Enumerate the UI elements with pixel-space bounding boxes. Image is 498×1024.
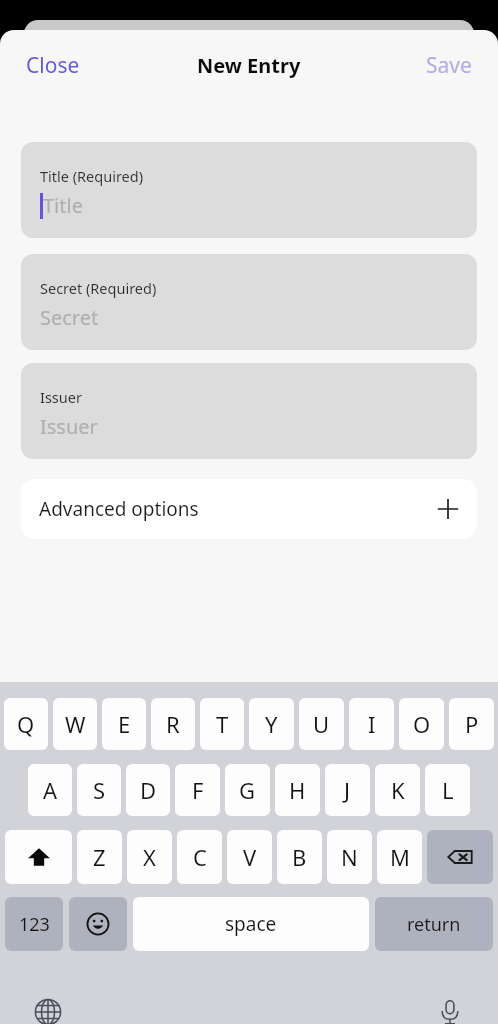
button[interactable]: B bbox=[277, 830, 322, 884]
button[interactable]: Close bbox=[22, 45, 84, 86]
staticText: F bbox=[192, 775, 204, 805]
button[interactable]: V bbox=[227, 830, 272, 884]
button[interactable]: Q bbox=[4, 698, 48, 750]
staticText: return bbox=[407, 912, 461, 937]
staticText: N bbox=[341, 842, 358, 872]
staticText: O bbox=[413, 709, 431, 739]
staticText: V bbox=[243, 842, 257, 872]
button[interactable]: Issuer bbox=[21, 363, 477, 459]
staticText: I bbox=[368, 709, 376, 739]
button[interactable]: return bbox=[375, 897, 493, 951]
button[interactable]: U bbox=[299, 698, 344, 750]
staticText: J bbox=[344, 775, 351, 805]
staticText: B bbox=[292, 842, 307, 872]
staticText: G bbox=[239, 775, 256, 805]
button[interactable]: G bbox=[225, 764, 270, 816]
staticText: K bbox=[391, 775, 405, 805]
button[interactable]: A bbox=[28, 764, 72, 816]
staticText: R bbox=[166, 709, 180, 739]
staticText: Y bbox=[265, 709, 278, 739]
staticText: Z bbox=[93, 842, 106, 872]
button[interactable]: E bbox=[102, 698, 146, 750]
staticText: A bbox=[43, 775, 58, 805]
button[interactable]: space bbox=[133, 897, 369, 951]
button[interactable]: O bbox=[399, 698, 444, 750]
staticText: Save bbox=[426, 51, 472, 80]
button[interactable]: N bbox=[327, 830, 372, 884]
staticText: S bbox=[93, 775, 106, 805]
staticText: M bbox=[390, 842, 410, 872]
button[interactable]: Advanced options bbox=[21, 479, 477, 539]
button[interactable]: W bbox=[53, 698, 97, 750]
button[interactable]: K bbox=[375, 764, 420, 816]
staticText: W bbox=[65, 709, 86, 739]
button[interactable]: Y bbox=[249, 698, 294, 750]
staticText: D bbox=[140, 775, 157, 805]
button[interactable]: Z bbox=[77, 830, 122, 884]
button[interactable]: J bbox=[325, 764, 370, 816]
button[interactable]: R bbox=[151, 698, 195, 750]
staticText: 123 bbox=[19, 912, 50, 937]
staticText: P bbox=[465, 709, 479, 739]
staticText: Close bbox=[26, 51, 80, 80]
button[interactable]: Secret (Required) bbox=[21, 254, 477, 350]
button[interactable]: Dictation bbox=[428, 990, 472, 1024]
button[interactable]: F bbox=[175, 764, 220, 816]
button[interactable]: I bbox=[349, 698, 394, 750]
button[interactable]: 123 bbox=[5, 897, 63, 951]
staticText: Title (Required) bbox=[40, 166, 144, 186]
staticText: Q bbox=[17, 709, 35, 739]
button[interactable]: Backspace bbox=[427, 830, 493, 884]
staticText: H bbox=[289, 775, 306, 805]
staticText: Secret bbox=[40, 304, 99, 331]
button[interactable]: X bbox=[127, 830, 172, 884]
staticText: E bbox=[118, 709, 131, 739]
button[interactable]: Emoji bbox=[69, 897, 127, 951]
button[interactable]: M bbox=[377, 830, 422, 884]
button[interactable]: T bbox=[200, 698, 244, 750]
staticText: Secret (Required) bbox=[40, 278, 157, 298]
button[interactable]: H bbox=[275, 764, 320, 816]
staticText: Advanced options bbox=[39, 496, 199, 522]
button[interactable]: Save bbox=[422, 45, 476, 86]
staticText: T bbox=[216, 709, 229, 739]
staticText: C bbox=[193, 842, 207, 872]
staticText: Title bbox=[43, 192, 83, 219]
staticText: Issuer bbox=[40, 387, 82, 407]
staticText: Issuer bbox=[40, 413, 98, 440]
staticText: U bbox=[313, 709, 330, 739]
staticText: L bbox=[442, 775, 454, 805]
button[interactable]: L bbox=[425, 764, 470, 816]
button[interactable]: Shift bbox=[5, 830, 72, 884]
button[interactable]: Title (Required) bbox=[21, 142, 477, 238]
button[interactable]: C bbox=[177, 830, 222, 884]
button[interactable]: S bbox=[77, 764, 121, 816]
button[interactable]: D bbox=[126, 764, 170, 816]
staticText: New Entry bbox=[197, 52, 301, 79]
button[interactable]: P bbox=[449, 698, 494, 750]
staticText: space bbox=[225, 911, 277, 937]
staticText: X bbox=[143, 842, 156, 872]
button[interactable]: Change keyboard language bbox=[26, 990, 70, 1024]
